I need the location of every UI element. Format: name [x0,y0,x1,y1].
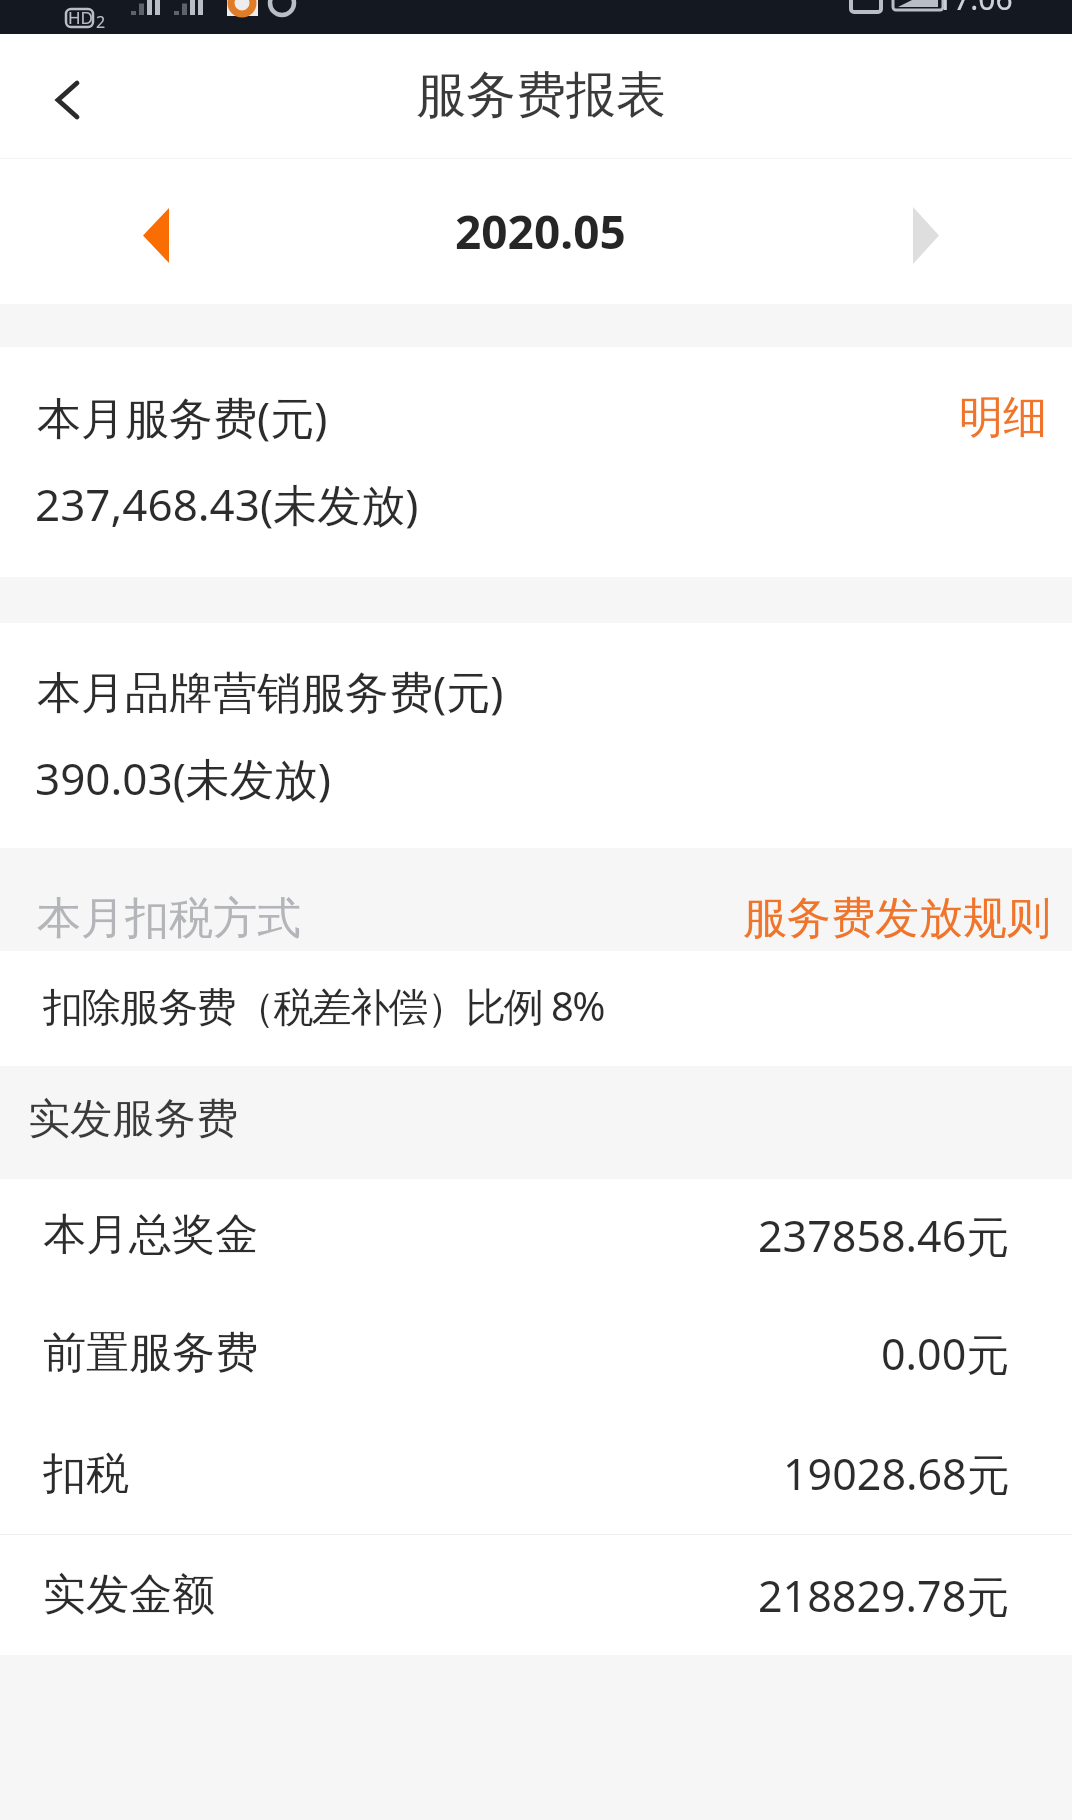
staticText: 本月总奖金 [43,1208,258,1262]
staticText: 实发金额 [43,1568,215,1622]
button[interactable]: Next month [885,194,961,270]
button[interactable]: 服务费发放规则 [735,891,1059,951]
button[interactable]: 前置服务费 [0,1297,1072,1415]
button[interactable]: Previous month [118,194,194,270]
staticText: 17:06 [936,0,1013,12]
staticText: 扣除服务费（税差补偿）比例 8% [43,978,604,1033]
staticText: 实发服务费 [28,1093,238,1146]
staticText: 2 [96,11,106,33]
staticText: 390.03(未发放) [35,748,332,808]
staticText: 本月服务费(元) [37,387,328,447]
staticText: 19028.68元 [783,1444,1010,1503]
staticText: 本月品牌营销服务费(元) [37,661,504,721]
staticText: 237,468.43(未发放) [35,474,419,534]
staticText: 218829.78元 [758,1566,1010,1625]
button[interactable]: 明细 [949,387,1057,447]
button[interactable]: 实发金额 [0,1535,1072,1655]
staticText: 前置服务费 [43,1326,258,1380]
staticText: 2020.05 [455,200,626,263]
staticText: 237858.46元 [758,1206,1010,1265]
staticText: 服务费发放规则 [743,891,1051,946]
staticText: 0.00元 [881,1324,1010,1383]
button[interactable]: Back [31,62,101,132]
button[interactable]: 扣税 [0,1415,1072,1534]
button[interactable]: 本月总奖金 [0,1179,1072,1297]
staticText: 服务费报表 [416,64,666,127]
staticText: 本月扣税方式 [37,891,301,946]
staticText: HD [68,6,94,29]
staticText: 明细 [959,390,1047,445]
staticText: 扣税 [43,1447,129,1501]
